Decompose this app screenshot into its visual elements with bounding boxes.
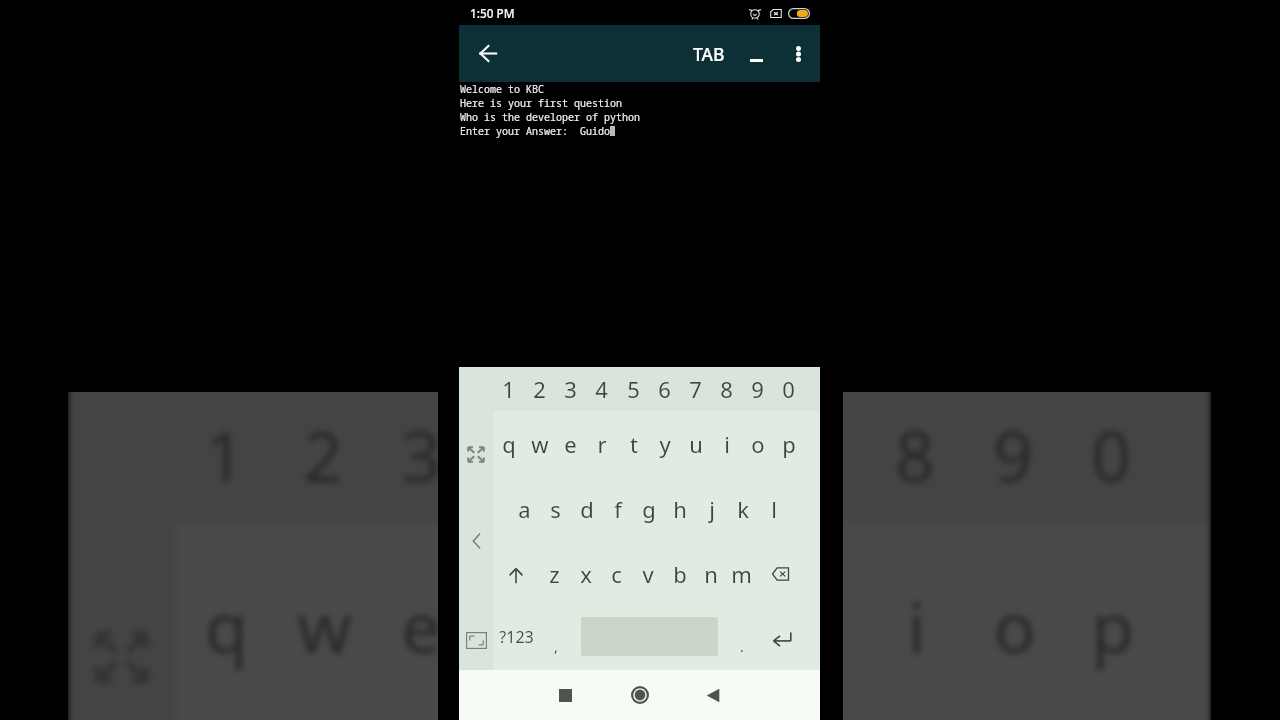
- button[interactable]: t: [618, 411, 649, 476]
- staticText: c: [611, 559, 622, 589]
- button[interactable]: Backspace: [757, 541, 804, 606]
- button[interactable]: u: [680, 411, 711, 476]
- staticText: y: [659, 429, 671, 459]
- staticText: a: [518, 494, 531, 524]
- staticText: 8: [894, 407, 935, 500]
- staticText: 1:50 PM: [470, 5, 515, 21]
- button[interactable]: Back: [469, 34, 507, 72]
- staticText: d: [580, 494, 594, 524]
- button[interactable]: 1: [493, 367, 524, 411]
- staticText: o: [751, 429, 765, 459]
- button[interactable]: Shift: [493, 541, 539, 606]
- button[interactable]: c: [601, 541, 632, 606]
- button[interactable]: e: [555, 411, 586, 476]
- button[interactable]: r: [586, 411, 617, 476]
- button[interactable]: Floating keyboard: [459, 615, 493, 665]
- staticText: TAB: [693, 42, 725, 66]
- button[interactable]: p: [773, 411, 804, 476]
- staticText: p: [782, 429, 796, 459]
- button[interactable]: q: [493, 411, 524, 476]
- staticText: i: [907, 578, 926, 671]
- button[interactable]: l: [758, 476, 789, 541]
- button[interactable]: b: [664, 541, 695, 606]
- button[interactable]: 0: [773, 367, 804, 411]
- staticText: v: [642, 559, 654, 589]
- staticText: Welcome to KBC: [460, 82, 544, 96]
- button[interactable]: f: [602, 476, 633, 541]
- staticText: 4: [499, 407, 540, 500]
- staticText: 5: [627, 374, 640, 404]
- staticText: 5: [600, 407, 641, 500]
- button[interactable]: ,: [539, 606, 573, 671]
- staticText: 0: [782, 374, 795, 404]
- button[interactable]: Previous: [459, 516, 493, 566]
- staticText: 9: [992, 407, 1034, 500]
- button[interactable]: Expand keyboard: [459, 429, 493, 479]
- staticText: g: [642, 494, 656, 524]
- staticText: Here is your first question: [460, 96, 622, 110]
- staticText: 4: [595, 374, 608, 404]
- button[interactable]: j: [696, 476, 727, 541]
- button[interactable]: 2: [524, 367, 555, 411]
- staticText: 6: [698, 407, 739, 500]
- button[interactable]: m: [726, 541, 757, 606]
- staticText: i: [724, 429, 730, 459]
- button[interactable]: 8: [711, 367, 742, 411]
- button[interactable]: h: [664, 476, 695, 541]
- button[interactable]: 4: [586, 367, 617, 411]
- button[interactable]: z: [539, 541, 570, 606]
- button[interactable]: o: [742, 411, 773, 476]
- button[interactable]: Recents: [541, 671, 589, 719]
- staticText: 2: [533, 374, 546, 404]
- staticText: ?123: [499, 626, 534, 648]
- button[interactable]: y: [649, 411, 680, 476]
- button[interactable]: Home: [616, 671, 664, 719]
- staticText: t: [630, 429, 638, 459]
- staticText: 0: [1091, 407, 1132, 500]
- button[interactable]: ?123: [493, 606, 539, 671]
- staticText: o: [992, 578, 1037, 671]
- staticText: ,: [554, 637, 558, 656]
- button[interactable]: 7: [680, 367, 711, 411]
- button[interactable]: 5: [618, 367, 649, 411]
- staticText: u: [689, 429, 703, 459]
- staticText: h: [673, 494, 687, 524]
- button[interactable]: Enter: [759, 606, 805, 671]
- staticText: r: [597, 429, 607, 459]
- button[interactable]: d: [571, 476, 602, 541]
- button[interactable]: Back: [689, 671, 737, 719]
- staticText: f: [614, 494, 622, 524]
- button[interactable]: TAB: [687, 25, 731, 82]
- staticText: x: [580, 559, 592, 589]
- button[interactable]: 3: [555, 367, 586, 411]
- staticText: z: [549, 559, 560, 589]
- staticText: s: [550, 494, 561, 524]
- button[interactable]: x: [570, 541, 601, 606]
- staticText: 2: [302, 407, 343, 500]
- staticText: 8: [720, 374, 733, 404]
- staticText: Enter your Answer: Guido: [460, 124, 610, 138]
- staticText: n: [704, 559, 718, 589]
- button[interactable]: w: [524, 411, 555, 476]
- button[interactable]: v: [632, 541, 663, 606]
- button[interactable]: a: [509, 476, 540, 541]
- button[interactable]: n: [695, 541, 726, 606]
- button[interactable]: More options: [778, 25, 818, 82]
- button[interactable]: i: [711, 411, 742, 476]
- staticText: p: [1091, 578, 1135, 671]
- staticText: 7: [796, 407, 837, 500]
- staticText: Who is the developer of python: [460, 110, 640, 124]
- staticText: q: [502, 429, 516, 459]
- staticText: t: [609, 578, 635, 671]
- staticText: 9: [751, 374, 764, 404]
- staticText: 3: [400, 407, 442, 500]
- button[interactable]: .: [725, 606, 759, 671]
- button[interactable]: Minimise: [736, 25, 776, 82]
- staticText: b: [673, 559, 687, 589]
- button[interactable]: k: [727, 476, 758, 541]
- button[interactable]: g: [633, 476, 664, 541]
- button[interactable]: s: [540, 476, 571, 541]
- button[interactable]: 6: [649, 367, 680, 411]
- button[interactable]: 9: [742, 367, 773, 411]
